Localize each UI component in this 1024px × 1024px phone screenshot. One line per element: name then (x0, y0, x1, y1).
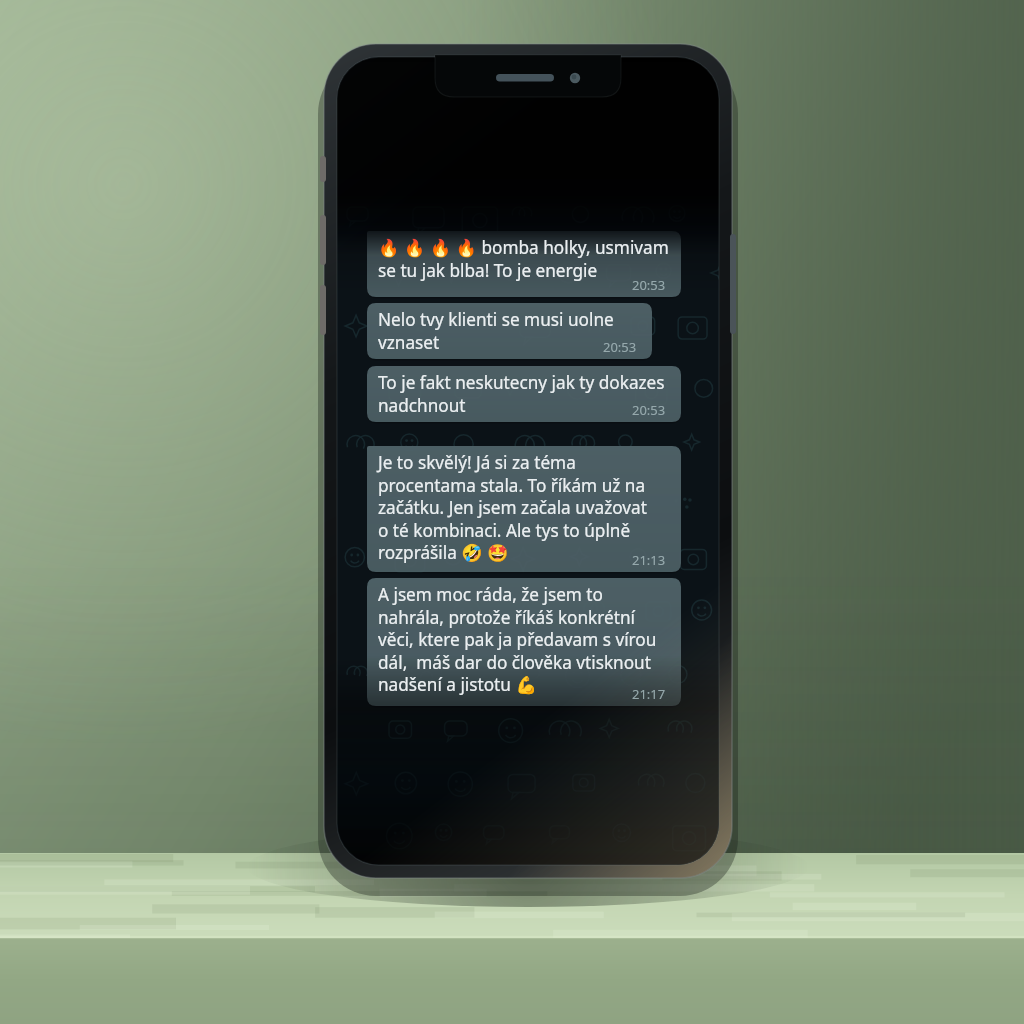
staticText: 20:53 (603, 338, 637, 356)
button[interactable]: nahrála, protože říkáš konkrétní (378, 606, 700, 629)
button[interactable]: vznaset (378, 331, 700, 354)
button[interactable]: dál, máš dar do člověka vtisknout (378, 651, 700, 674)
button[interactable]: rozprášila 🤣 🤩 (378, 541, 700, 564)
staticText: 20:53 (632, 276, 666, 294)
button[interactable]: To je fakt neskutecny jak ty dokazes (378, 371, 700, 394)
button[interactable]: věci, ktere pak ja předavam s vírou (378, 628, 700, 651)
button[interactable]: Nelo tvy klienti se musi uolne (378, 308, 700, 331)
button[interactable]: začátku. Jen jsem začala uvažovat (378, 496, 700, 519)
button[interactable]: procentama stala. To říkám už na (378, 474, 700, 497)
button[interactable]: se tu jak blba! To je energie (378, 259, 700, 282)
button[interactable]: A jsem moc ráda, že jsem to (378, 583, 700, 606)
staticText: 20:53 (632, 401, 666, 419)
button[interactable]: o té kombinaci. Ale tys to úplně (378, 519, 700, 542)
button[interactable]: nadšení a jistotu 💪 (378, 673, 700, 696)
staticText: 21:17 (632, 685, 666, 703)
button[interactable]: nadchnout (378, 394, 700, 417)
button[interactable]: Je to skvělý! Já si za téma (378, 451, 700, 474)
button[interactable]: 🔥 🔥 🔥 🔥 bomba holky, usmivam (378, 236, 700, 259)
staticText: 21:13 (632, 551, 666, 569)
